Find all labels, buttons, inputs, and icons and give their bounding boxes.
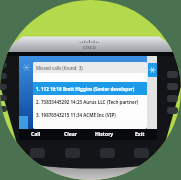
- staticText: Call: [31, 131, 41, 138]
- staticText: Clear: [64, 131, 77, 138]
- button[interactable]: Clear: [53, 129, 87, 140]
- button[interactable]: Line 1: [148, 63, 157, 77]
- button[interactable]: Line key: [167, 71, 178, 78]
- staticText: cisco: [83, 43, 96, 50]
- button[interactable]: Line key: [0, 73, 7, 79]
- staticText: Exit: [135, 131, 145, 138]
- button[interactable]: Soft key 2: [65, 148, 80, 158]
- button[interactable]: Line key: [0, 84, 7, 90]
- button[interactable]: Line key: [167, 107, 178, 114]
- button[interactable]: Line key: [0, 62, 7, 68]
- button[interactable]: Line key: [167, 95, 178, 102]
- button[interactable]: 2. 73833445292 14:23 Aurus LLC (Tech par…: [33, 95, 147, 108]
- staticText: 2. 73833445292 14:23 Aurus LLC (Tech par…: [36, 99, 139, 105]
- staticText: Missed calls (found: 3): [36, 65, 83, 71]
- button[interactable]: Call: [19, 129, 53, 140]
- button[interactable]: Line key: [0, 95, 7, 101]
- button[interactable]: 3. 19876543215 11:34 ACME Inc (VIP): [33, 108, 147, 121]
- staticText: 1. 112 16:16 Brett Higgins (Senior devel…: [36, 86, 135, 92]
- button[interactable]: Soft key 3: [100, 148, 115, 158]
- button[interactable]: Line key: [0, 106, 7, 112]
- button[interactable]: Soft key 1: [30, 148, 45, 158]
- button[interactable]: Soft key 4: [134, 148, 149, 158]
- button[interactable]: Line key: [167, 83, 178, 90]
- button[interactable]: Exit: [122, 129, 157, 140]
- staticText: History: [95, 131, 114, 138]
- button[interactable]: 1. 112 16:16 Brett Higgins (Senior devel…: [33, 82, 147, 95]
- staticText: 3. 19876543215 11:34 ACME Inc (VIP): [36, 112, 116, 118]
- button[interactable]: History: [87, 129, 122, 140]
